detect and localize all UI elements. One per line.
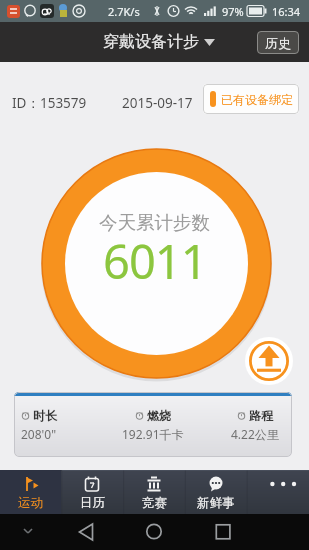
- button[interactable]: 运动: [0, 470, 61, 514]
- button[interactable]: 新鲜事: [185, 470, 247, 514]
- staticText: 穿戴设备计步: [103, 32, 199, 52]
- staticText: 192.91千卡: [122, 426, 184, 442]
- button[interactable]: 日历: [61, 470, 123, 514]
- staticText: 6011: [103, 229, 207, 293]
- staticText: 时长: [33, 408, 57, 423]
- staticText: 新鲜事: [197, 495, 235, 511]
- staticText: 97%: [222, 4, 244, 19]
- staticText: 2015-09-17: [122, 94, 193, 112]
- staticText: 运动: [18, 495, 43, 511]
- staticText: 路程: [249, 408, 273, 423]
- button[interactable]: 历史: [257, 31, 299, 54]
- staticText: ID：153579: [12, 94, 87, 112]
- staticText: 竞赛: [142, 495, 167, 511]
- staticText: 今天累计步数: [99, 211, 210, 234]
- staticText: 16:34: [272, 4, 301, 19]
- staticText: 4.22公里: [231, 426, 279, 442]
- staticText: 历史: [265, 35, 291, 51]
- button[interactable]: 竞赛: [123, 470, 185, 514]
- button[interactable]: 已有设备绑定: [203, 84, 299, 114]
- staticText: 2.7K/s: [108, 4, 140, 19]
- staticText: 208'0": [21, 426, 57, 442]
- staticText: 已有设备绑定: [221, 92, 293, 107]
- button[interactable]: [247, 470, 309, 514]
- button[interactable]: [245, 337, 293, 385]
- staticText: 日历: [80, 495, 105, 511]
- staticText: 燃烧: [147, 408, 171, 423]
